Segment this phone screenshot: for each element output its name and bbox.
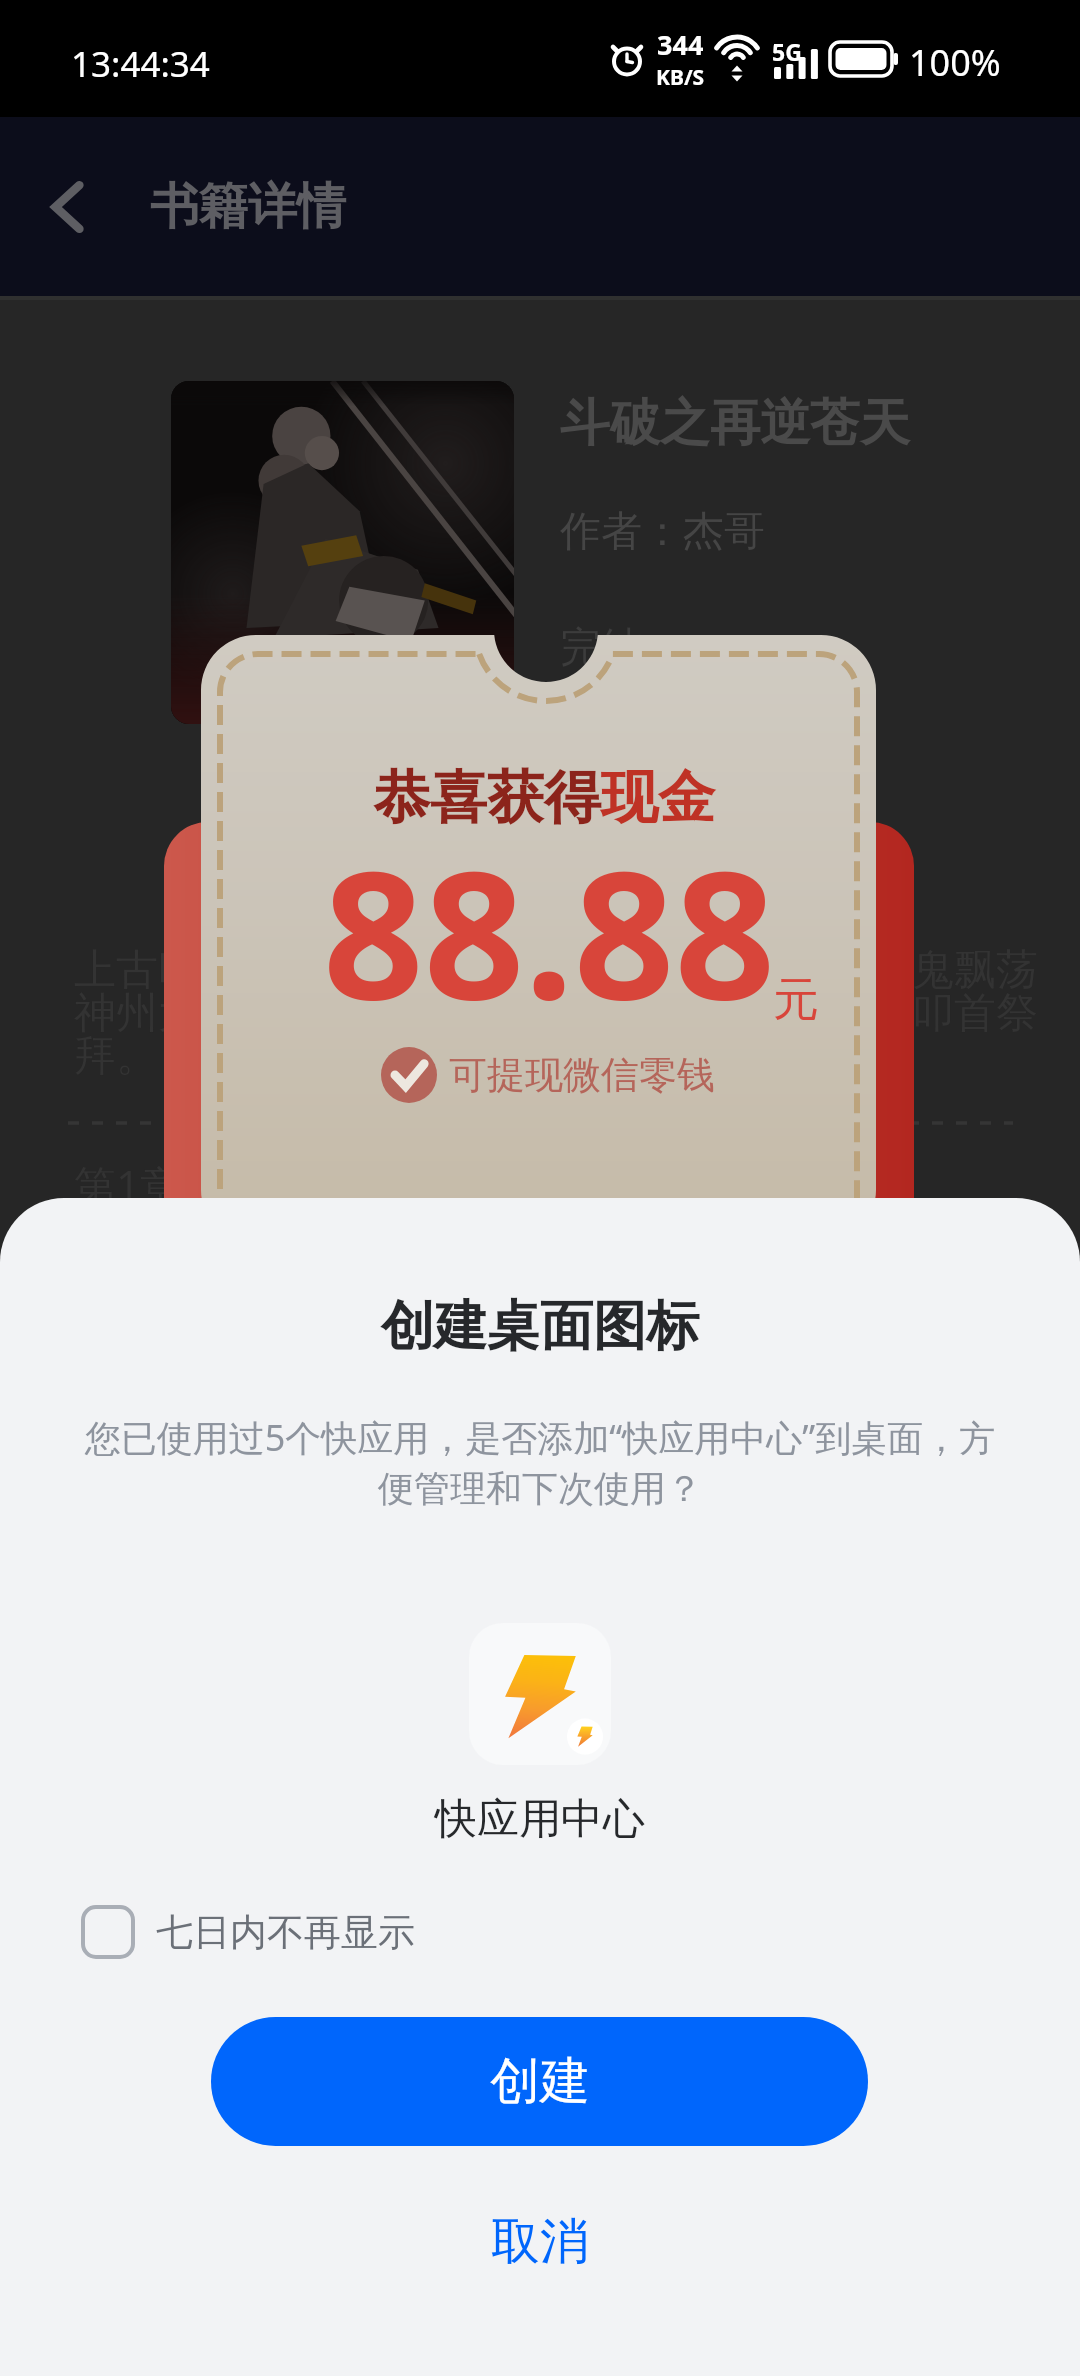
staticText: 快应用中心 xyxy=(0,1793,1080,1846)
staticText: 可提现微信零钱 xyxy=(449,1051,715,1099)
staticText: 13:44:34 xyxy=(71,40,210,88)
staticText: 88.88 xyxy=(323,811,776,1051)
button[interactable]: Back xyxy=(23,161,115,253)
staticText: 现金 xyxy=(601,762,715,834)
staticText: 第1章 xyxy=(74,1156,183,1213)
button[interactable]: 创建 xyxy=(211,2017,868,2146)
staticText: 完结 xyxy=(560,622,642,674)
staticText: 书籍详情 xyxy=(150,176,346,238)
staticText: 5G xyxy=(772,36,802,67)
staticText: 七日内不再显示 xyxy=(156,1909,415,1956)
staticText: KB/S xyxy=(656,63,705,92)
staticText: 344 xyxy=(657,26,704,63)
staticText: 上古时期，神州大地，万族林立，群魔 神州大陆，万古长夜，群雄并起，鬼魅 拜。 xyxy=(74,944,788,1083)
staticText: 恭喜获得 xyxy=(373,762,601,834)
staticText: 斗破之再逆苍天 xyxy=(560,392,910,455)
staticText: 创建 xyxy=(490,2050,590,2113)
staticText: 创建桌面图标 xyxy=(0,1293,1080,1360)
staticText: 100% xyxy=(909,38,1001,87)
staticText: 作者：杰哥 xyxy=(560,506,765,558)
button[interactable]: 七日内不再显示 xyxy=(72,1896,424,1968)
button[interactable]: 取消 xyxy=(0,2182,1080,2302)
staticText: 取消 xyxy=(491,2211,589,2273)
staticText: 您已使用过5个快应用，是否添加“快应用中心”到桌面，方 便管理和下次使用？ xyxy=(0,1413,1080,1512)
staticText: 鬼飘荡 叩首祭 xyxy=(912,944,1038,1040)
staticText: 元 xyxy=(773,971,819,1029)
